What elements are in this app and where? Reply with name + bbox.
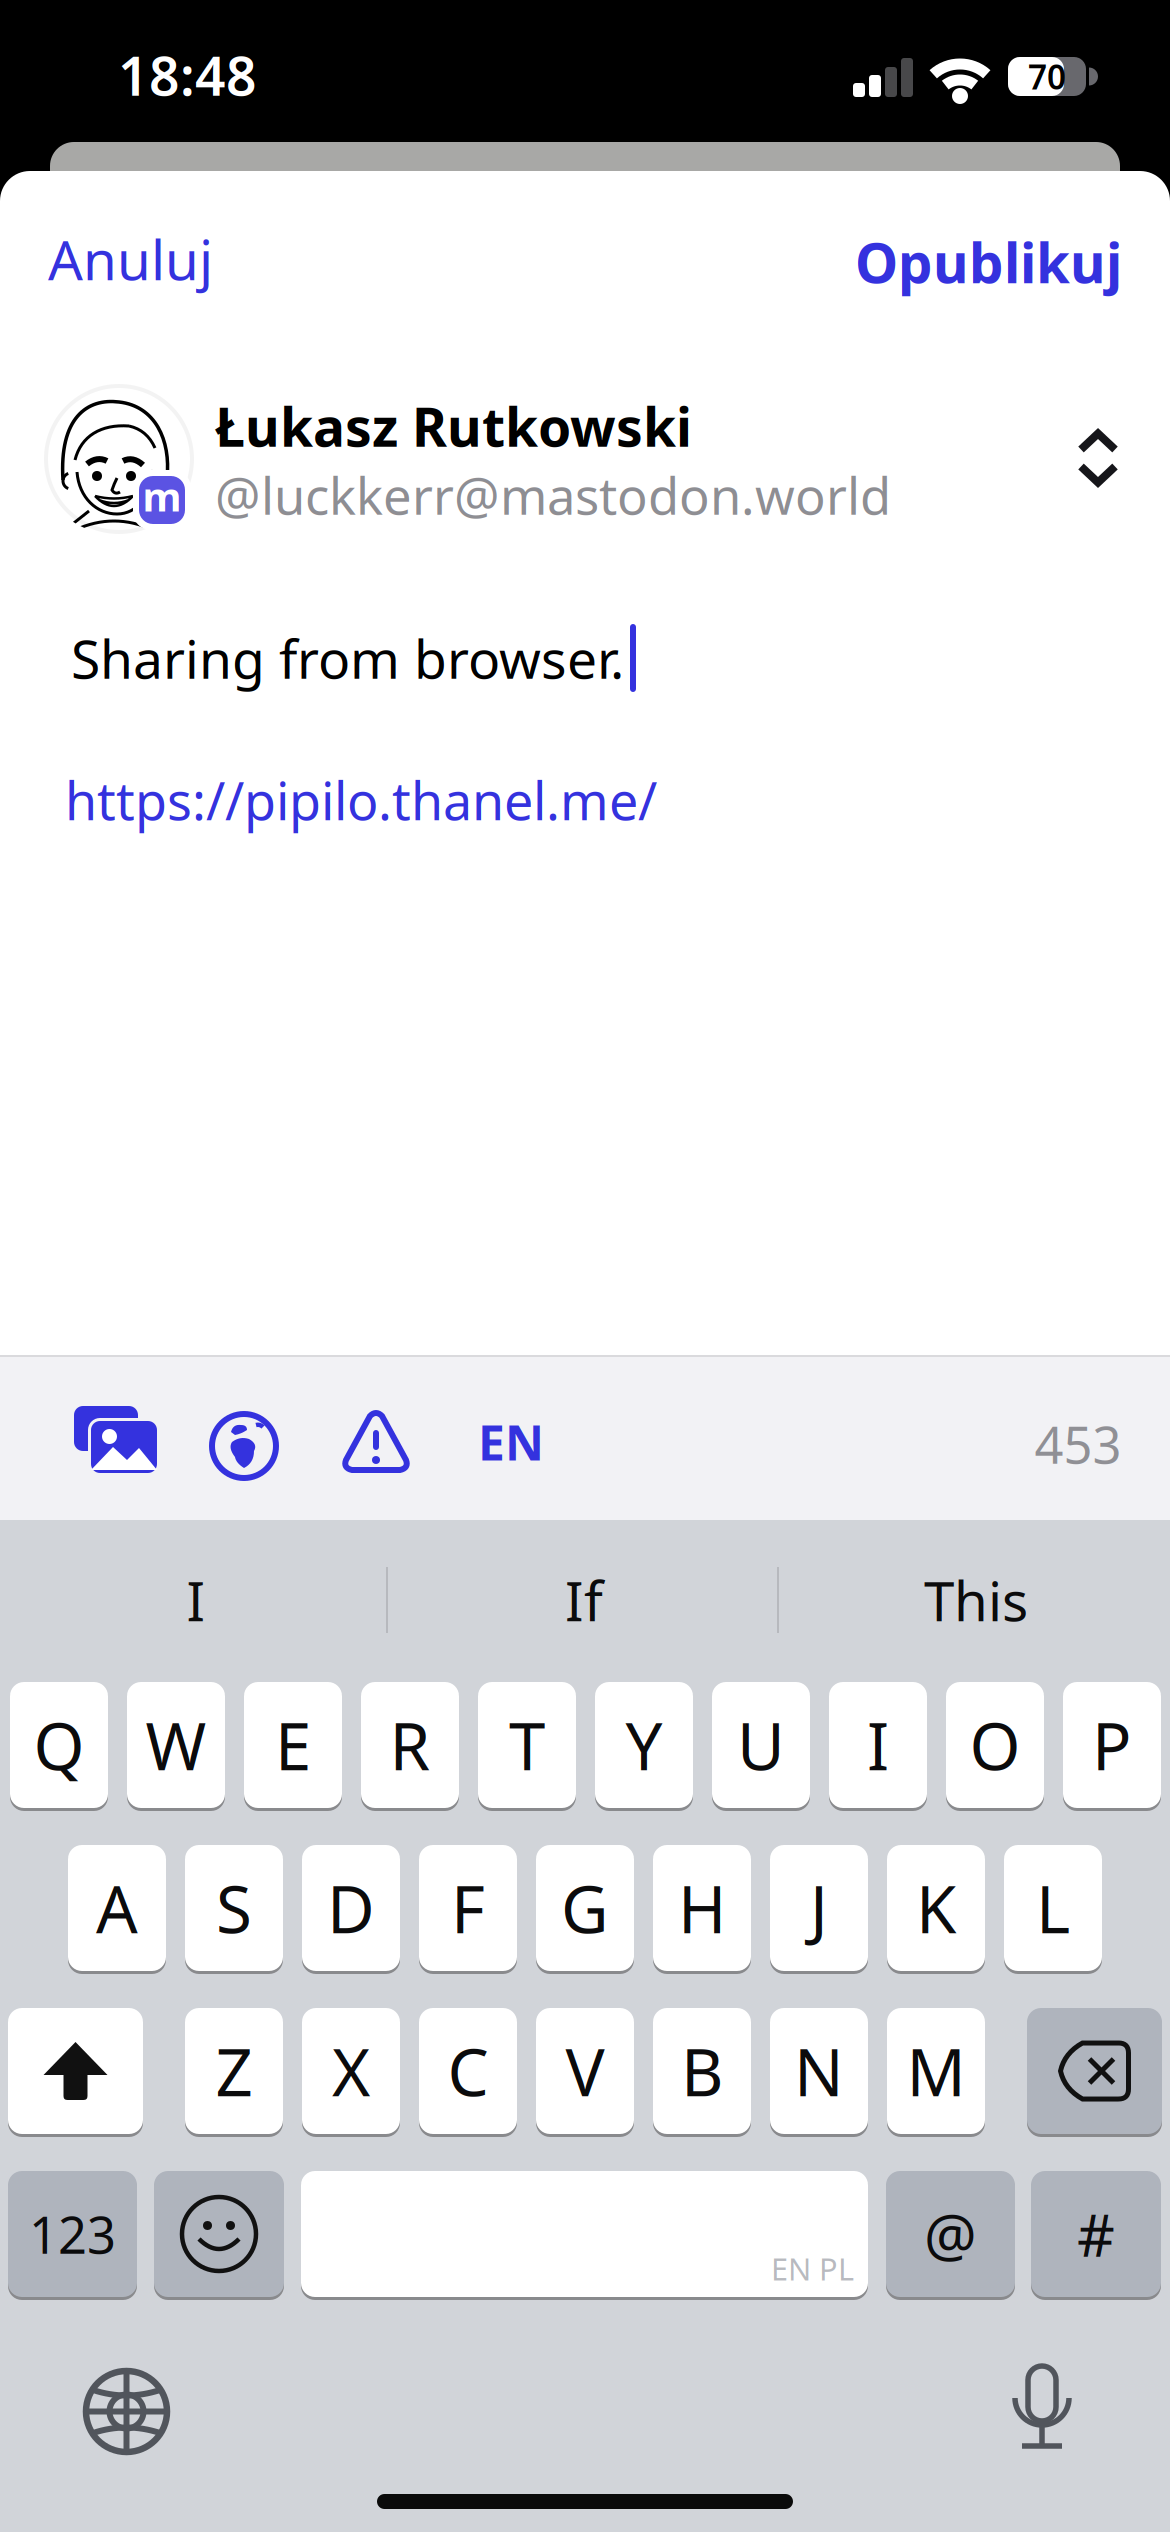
staticText: 18:48 xyxy=(118,40,257,110)
button[interactable]: S xyxy=(185,1845,283,1971)
staticText: B xyxy=(681,2028,723,2114)
button[interactable]: A xyxy=(68,1845,166,1971)
staticText: X xyxy=(332,2028,370,2114)
button[interactable]: # xyxy=(1031,2171,1161,2297)
button[interactable]: L xyxy=(1004,1845,1102,1971)
button[interactable]: K xyxy=(887,1845,985,1971)
button[interactable]: M xyxy=(887,2008,985,2134)
staticText: 123 xyxy=(29,2200,116,2268)
button[interactable]: I xyxy=(829,1682,927,1808)
staticText: @ xyxy=(924,2195,977,2273)
staticText: D xyxy=(327,1865,375,1951)
staticText: L xyxy=(1036,1865,1070,1951)
staticText: W xyxy=(145,1702,206,1788)
staticText: C xyxy=(447,2028,488,2114)
button[interactable]: N xyxy=(770,2008,868,2134)
button[interactable]: C xyxy=(419,2008,517,2134)
button[interactable]: T xyxy=(478,1682,576,1808)
button[interactable]: 123 xyxy=(8,2171,137,2297)
staticText: A xyxy=(96,1865,138,1951)
staticText: EN xyxy=(478,1410,544,1474)
staticText: O xyxy=(969,1702,1020,1788)
button[interactable]: Add media xyxy=(74,1406,160,1476)
button[interactable]: Y xyxy=(595,1682,693,1808)
button[interactable]: Dictation xyxy=(1015,2366,1069,2449)
button[interactable]: Z xyxy=(185,2008,283,2134)
button[interactable]: Q xyxy=(10,1682,108,1808)
button[interactable]: Opublikuj xyxy=(0,217,1170,307)
button[interactable]: J xyxy=(770,1845,868,1971)
staticText: EN PL xyxy=(771,2248,854,2289)
button[interactable]: G xyxy=(536,1845,634,1971)
button[interactable]: Visibility xyxy=(212,1414,276,1478)
staticText: Q xyxy=(33,1702,84,1788)
staticText: S xyxy=(216,1865,252,1951)
staticText: F xyxy=(451,1865,485,1951)
staticText: V xyxy=(565,2028,604,2114)
staticText: # xyxy=(1077,2195,1115,2273)
staticText: @luckkerr@mastodon.world xyxy=(215,461,891,529)
button[interactable]: Change account xyxy=(1081,431,1115,484)
staticText: I xyxy=(186,1564,205,1636)
button[interactable]: I xyxy=(186,1564,205,1636)
button[interactable]: Delete xyxy=(1027,2008,1162,2134)
staticText: Y xyxy=(625,1702,662,1788)
staticText: Łukasz Rutkowski xyxy=(215,391,692,461)
staticText: Z xyxy=(215,2028,252,2114)
button[interactable]: U xyxy=(712,1682,810,1808)
button[interactable]: D xyxy=(302,1845,400,1971)
staticText: This xyxy=(924,1564,1028,1636)
button[interactable]: Space xyxy=(301,2171,868,2297)
staticText: J xyxy=(810,1865,828,1951)
button[interactable]: Next keyboard xyxy=(86,2371,167,2452)
button[interactable]: @ xyxy=(886,2171,1015,2297)
button[interactable]: W xyxy=(127,1682,225,1808)
button[interactable]: E xyxy=(244,1682,342,1808)
staticText: Anuluj xyxy=(48,223,213,295)
button[interactable]: This xyxy=(924,1564,1028,1636)
staticText: N xyxy=(794,2028,844,2114)
staticText: M xyxy=(906,2028,965,2114)
button[interactable]: F xyxy=(419,1845,517,1971)
staticText: Opublikuj xyxy=(855,226,1122,298)
staticText: 70 xyxy=(1028,54,1066,99)
staticText: H xyxy=(678,1865,726,1951)
staticText: 453 xyxy=(1034,1410,1121,1478)
staticText: P xyxy=(1092,1702,1132,1788)
button[interactable]: X xyxy=(302,2008,400,2134)
staticText: I xyxy=(867,1702,889,1788)
button[interactable]: H xyxy=(653,1845,751,1971)
staticText: https://pipilo.thanel.me/ xyxy=(65,765,657,835)
staticText: G xyxy=(561,1865,609,1951)
button[interactable]: O xyxy=(946,1682,1044,1808)
button[interactable]: B xyxy=(653,2008,751,2134)
button[interactable]: Emoji xyxy=(154,2171,284,2297)
staticText: U xyxy=(737,1702,785,1788)
button[interactable]: EN xyxy=(478,1410,544,1474)
staticText: K xyxy=(916,1865,956,1951)
staticText: If xyxy=(565,1564,603,1636)
button[interactable]: Anuluj xyxy=(0,0,1170,90)
button[interactable]: V xyxy=(536,2008,634,2134)
button[interactable]: Shift xyxy=(8,2008,143,2134)
staticText: Sharing from browser. xyxy=(71,623,624,693)
button[interactable]: R xyxy=(361,1682,459,1808)
button[interactable]: If xyxy=(565,1564,603,1636)
staticText: m xyxy=(142,469,181,522)
staticText: T xyxy=(509,1702,545,1788)
staticText: R xyxy=(389,1702,430,1788)
staticText: E xyxy=(275,1702,311,1788)
button[interactable]: P xyxy=(1063,1682,1161,1808)
button[interactable]: Content warning xyxy=(343,1410,409,1472)
